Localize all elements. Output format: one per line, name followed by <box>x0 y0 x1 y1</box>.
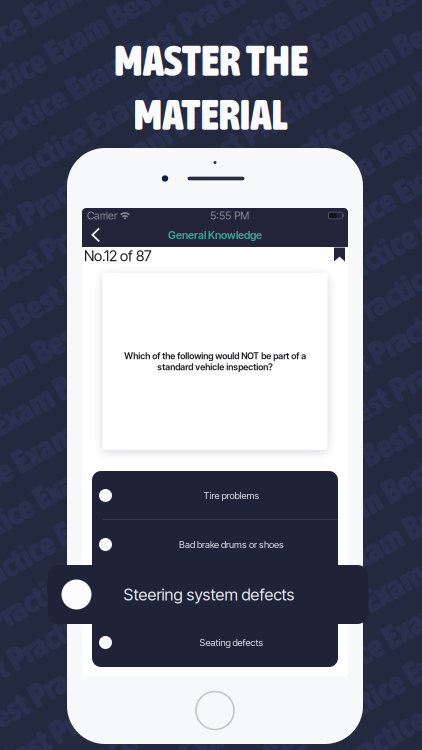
staticText: Which of the following would NOT be part… <box>124 351 306 372</box>
staticText: Best Practice Exam Best Practice Exam Be… <box>0 166 422 204</box>
staticText: Best Practice Exam Best Practice Exam Be… <box>0 588 422 626</box>
staticText: Steering system defects <box>123 585 294 604</box>
staticText: Best Practice Exam Best Practice Exam Be… <box>0 461 422 500</box>
staticText: 5:55 PM <box>210 209 249 222</box>
staticText: Carrier <box>87 209 117 222</box>
button[interactable]: Steering system defects <box>92 569 338 618</box>
staticText: Best Practice Exam Best Practice Exam Be… <box>0 377 422 415</box>
staticText: Best Practice Exam Best Practice Exam Be… <box>0 124 422 162</box>
staticText: Seating defects <box>199 637 263 648</box>
staticText: Steering system defects <box>181 588 281 599</box>
staticText: No.12 of 87 <box>84 247 152 265</box>
staticText: MATERIAL <box>133 90 288 139</box>
staticText: Best Practice Exam Best Practice Exam Be… <box>0 546 422 584</box>
button[interactable]: Steering system defects <box>47 565 368 624</box>
button[interactable]: Tire problems <box>92 471 338 520</box>
staticText: Best Practice Exam Best Practice Exam Be… <box>0 39 422 78</box>
staticText: Best Practice Exam Best Practice Exam Be… <box>0 0 422 35</box>
staticText: Best Practice Exam Best Practice Exam Be… <box>0 630 422 668</box>
button[interactable]: Seating defects <box>92 618 338 667</box>
staticText: Tire problems <box>203 490 259 501</box>
staticText: Best Practice Exam Best Practice Exam Be… <box>0 82 422 120</box>
staticText: Best Practice Exam Best Practice Exam Be… <box>0 335 422 373</box>
staticText: MASTER THE <box>114 36 308 85</box>
staticText: Best Practice Exam Best Practice Exam Be… <box>0 715 422 750</box>
button[interactable]: Back <box>84 224 108 245</box>
staticText: Best Practice Exam Best Practice Exam Be… <box>0 293 422 331</box>
staticText: Best Practice Exam Best Practice Exam Be… <box>0 419 422 457</box>
button[interactable]: Bad brake drums or shoes <box>92 520 338 569</box>
staticText: Best Practice Exam Best Practice Exam Be… <box>0 672 422 711</box>
staticText: Bad brake drums or shoes <box>179 539 284 550</box>
staticText: Best Practice Exam Best Practice Exam Be… <box>0 250 422 289</box>
staticText: Best Practice Exam Best Practice Exam Be… <box>0 504 422 542</box>
staticText: General Knowledge <box>168 228 262 242</box>
button[interactable]: Bookmark question <box>334 247 345 261</box>
staticText: Best Practice Exam Best Practice Exam Be… <box>0 208 422 246</box>
